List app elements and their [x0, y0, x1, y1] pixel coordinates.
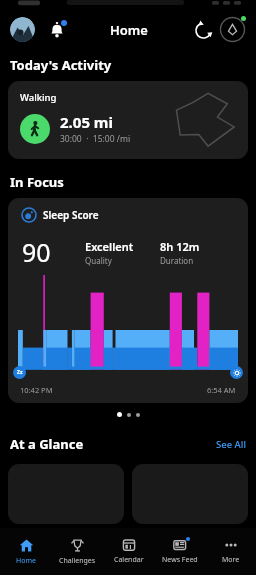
staticText: Zz — [17, 369, 23, 376]
button[interactable]: See All — [216, 438, 246, 451]
button[interactable]: More — [205, 528, 256, 575]
staticText: Home — [110, 21, 148, 39]
staticText: 90 — [22, 235, 51, 269]
button[interactable]: Home — [0, 528, 52, 575]
button[interactable] — [8, 464, 124, 524]
button[interactable]: Profile — [10, 17, 35, 42]
staticText: Today's Activity — [10, 56, 112, 74]
button[interactable]: Sync — [191, 18, 215, 42]
staticText: Quality — [85, 255, 112, 266]
button[interactable]: Device — [219, 16, 246, 43]
staticText: In Focus — [10, 173, 64, 191]
button[interactable]: Calendar — [103, 528, 154, 575]
staticText: Sleep Score — [43, 208, 99, 222]
staticText: Home — [16, 556, 36, 566]
staticText: See All — [216, 438, 246, 451]
staticText: At a Glance — [10, 435, 84, 453]
staticText: 6:54 AM — [207, 385, 236, 395]
staticText: 30:00 · 15:00 /mi — [60, 133, 131, 145]
staticText: More — [222, 555, 240, 565]
staticText: 8h 12m — [160, 239, 200, 254]
staticText: Walking — [20, 91, 57, 104]
staticText: Challenges — [59, 556, 96, 566]
button[interactable]: News Feed — [154, 528, 205, 575]
staticText: 2.05 mi — [60, 112, 113, 132]
button[interactable]: Notifications — [46, 19, 68, 41]
staticText: News Feed — [162, 555, 198, 565]
button[interactable]: Sleep Score — [8, 198, 248, 403]
staticText: Excellent — [85, 239, 134, 254]
button[interactable] — [132, 464, 248, 524]
staticText: Duration — [160, 255, 194, 266]
button[interactable]: Challenges — [52, 528, 103, 575]
button[interactable]: Walking — [8, 81, 248, 159]
staticText: 10:42 PM — [20, 385, 53, 395]
staticText: Calendar — [114, 555, 144, 565]
